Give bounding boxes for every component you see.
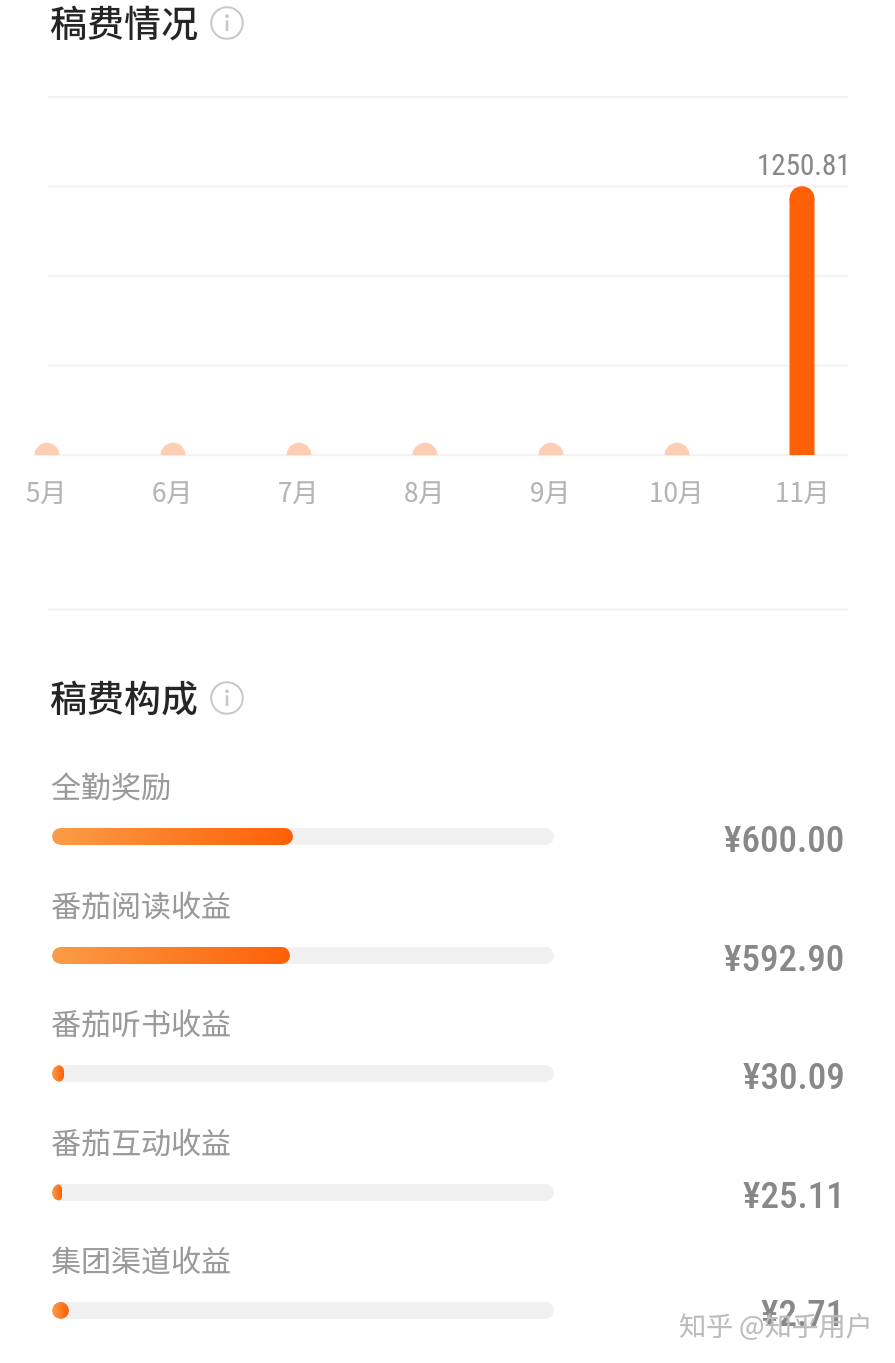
staticText: 6月 [152,472,193,510]
button[interactable]: 关于稿费构成的说明 [210,681,244,715]
staticText: 11月 [775,472,830,510]
staticText: ¥25.11 [743,1174,845,1217]
staticText: 8月 [404,472,445,510]
staticText: 番茄阅读收益 [51,882,231,925]
staticText: ¥600.00 [724,818,845,861]
staticText: ¥30.09 [743,1055,845,1098]
staticText: 番茄互动收益 [51,1119,231,1162]
staticText: 集团渠道收益 [51,1237,231,1280]
staticText: ¥592.90 [724,937,845,980]
staticText: 知乎 @知乎用户 [679,1305,873,1344]
staticText: 7月 [278,472,319,510]
button[interactable]: 全勤奖励 [0,763,895,875]
button[interactable]: 番茄阅读收益 [0,882,895,994]
button[interactable]: 番茄互动收益 [0,1119,895,1231]
staticText: 9月 [530,472,571,510]
staticText: 全勤奖励 [51,763,171,806]
staticText: 5月 [26,472,67,510]
staticText: 番茄听书收益 [51,1000,231,1043]
staticText: 1250.81 [757,148,851,182]
staticText: 10月 [649,472,704,510]
button[interactable]: 关于稿费情况的说明 [210,6,244,40]
button[interactable]: 集团渠道收益 [0,1237,895,1349]
staticText: ¥2.71 [761,1292,845,1335]
staticText: 稿费情况 [50,0,198,48]
staticText: 稿费构成 [50,669,198,723]
button[interactable]: 番茄听书收益 [0,1000,895,1112]
